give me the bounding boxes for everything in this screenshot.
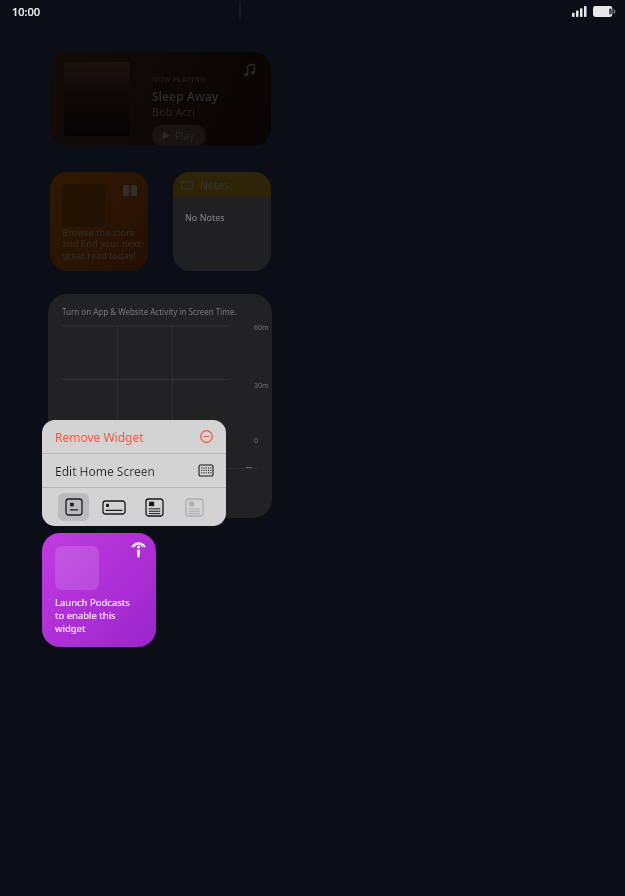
staticText: Launch Podcasts to enable this widget [55,596,130,635]
staticText: Sleep Away [152,88,219,104]
button[interactable]: Play [152,125,206,146]
button[interactable]: Remove Widget [42,420,226,453]
button[interactable]: Browse the store and find your next grea… [50,172,148,271]
button[interactable]: Small widget [58,493,89,521]
staticText: 10:00 [12,4,41,19]
staticText: -- [246,460,252,472]
button[interactable]: Notes [173,172,271,271]
staticText: 00 [64,445,73,455]
button[interactable]: Turn on App & Website Activity in Screen… [48,294,272,518]
button[interactable]: Edit Home Screen [42,454,226,487]
staticText: 18 [200,445,209,455]
staticText: Turn on App & Website Activity in Screen… [62,306,237,317]
staticText: Remove Widget [55,429,200,445]
button[interactable]: Extra large widget [179,493,210,521]
staticText: Browse the store and find your next grea… [62,226,141,262]
staticText: Notes [200,178,229,192]
button[interactable]: Medium widget [98,493,129,521]
staticText: 12 [155,445,164,455]
staticText: -- [64,460,70,472]
button[interactable]: Large widget [139,493,170,521]
staticText: 06 [110,445,119,455]
button[interactable]: Launch Podcasts to enable this widget [42,533,156,647]
staticText: Play [175,129,195,142]
button[interactable]: NOW PLAYING [50,52,271,146]
staticText: No Notes [185,211,225,223]
staticText: NOW PLAYING [152,75,206,85]
staticText: Edit Home Screen [55,463,199,479]
staticText: Bob Acri [152,104,196,119]
staticText: 60m [254,323,269,333]
staticText: 30m [254,381,269,391]
staticText: 0 [254,436,259,446]
